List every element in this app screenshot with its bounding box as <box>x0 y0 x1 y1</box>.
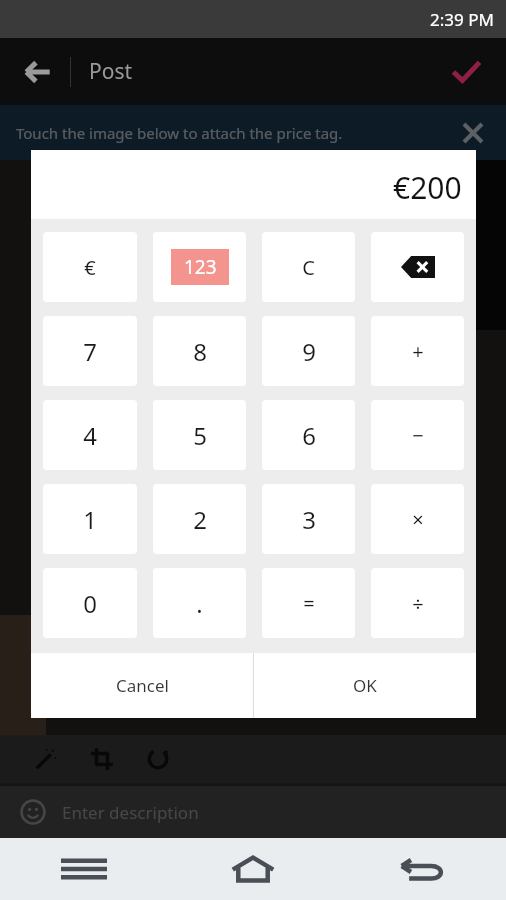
staticText: 5 <box>193 419 207 452</box>
button[interactable]: OK <box>254 653 476 718</box>
staticText: Enter description <box>62 801 199 824</box>
button[interactable]: Backspace <box>371 232 464 302</box>
button[interactable]: 7 <box>43 316 137 386</box>
button[interactable]: Confirm <box>442 48 490 96</box>
button[interactable]: . <box>153 568 246 638</box>
staticText: 1 <box>83 503 97 536</box>
staticText: €200 <box>393 167 462 208</box>
staticText: 6 <box>302 419 316 452</box>
button[interactable]: Back <box>337 838 506 900</box>
button[interactable]: Back <box>16 50 60 94</box>
button[interactable]: Close <box>456 116 490 150</box>
button[interactable]: C <box>262 232 355 302</box>
button[interactable]: 6 <box>262 400 355 470</box>
staticText: 2 <box>193 503 207 536</box>
button[interactable]: 0 <box>43 568 137 638</box>
staticText: 0 <box>83 587 97 620</box>
button[interactable]: 1 <box>43 484 137 554</box>
button[interactable]: Crop <box>82 739 122 779</box>
staticText: 3 <box>302 503 316 536</box>
button[interactable]: 3 <box>262 484 355 554</box>
staticText: 8 <box>193 335 207 368</box>
button[interactable]: = <box>262 568 355 638</box>
button[interactable]: 4 <box>43 400 137 470</box>
staticText: + <box>412 338 424 365</box>
staticText: 123 <box>184 254 217 280</box>
button[interactable]: € <box>43 232 137 302</box>
button[interactable]: Rotate <box>138 739 178 779</box>
staticText: € <box>84 254 96 281</box>
button[interactable]: 5 <box>153 400 246 470</box>
button[interactable]: Enhance <box>26 739 66 779</box>
staticText: C <box>302 254 315 281</box>
button[interactable]: ÷ <box>371 568 464 638</box>
staticText: 9 <box>302 335 316 368</box>
button[interactable]: Home <box>168 838 337 900</box>
staticText: × <box>412 506 424 533</box>
staticText: Post <box>89 57 133 86</box>
button[interactable]: 9 <box>262 316 355 386</box>
button[interactable]: × <box>371 484 464 554</box>
button[interactable]: 123 <box>153 232 246 302</box>
button[interactable]: 8 <box>153 316 246 386</box>
button[interactable]: + <box>371 316 464 386</box>
button[interactable]: Cancel <box>31 653 253 718</box>
staticText: Cancel <box>116 674 169 697</box>
button[interactable]: Menu <box>0 838 168 900</box>
button[interactable]: 2 <box>153 484 246 554</box>
button[interactable]: − <box>371 400 464 470</box>
staticText: ÷ <box>412 590 424 617</box>
staticText: . <box>196 587 203 620</box>
staticText: 7 <box>83 335 97 368</box>
staticText: OK <box>353 674 377 697</box>
staticText: = <box>303 590 315 617</box>
staticText: 4 <box>83 419 97 452</box>
staticText: − <box>412 422 424 449</box>
staticText: Touch the image below to attach the pric… <box>16 123 456 143</box>
staticText: 2:39 PM <box>430 8 494 31</box>
